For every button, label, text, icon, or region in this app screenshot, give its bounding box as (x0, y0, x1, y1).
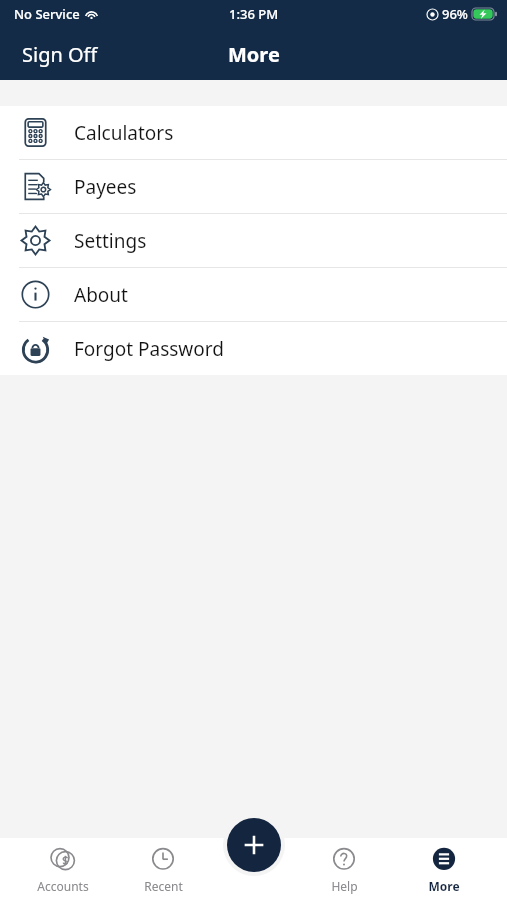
staticText: Sign Off (22, 41, 98, 68)
staticText: Forgot Password (74, 336, 224, 362)
button[interactable]: About (0, 268, 507, 322)
staticText: Recent (144, 878, 183, 894)
button[interactable]: Accounts (26, 841, 100, 898)
staticText: About (74, 282, 128, 308)
staticText: Payees (74, 174, 137, 200)
staticText: Settings (74, 228, 147, 254)
button[interactable]: Add (227, 818, 281, 872)
button[interactable]: Recent (126, 841, 200, 898)
button[interactable]: Calculators (0, 106, 507, 160)
staticText: No Service (14, 5, 80, 23)
staticText: 96% (442, 5, 468, 23)
staticText: More (228, 41, 280, 68)
staticText: More (428, 878, 460, 894)
button[interactable]: More (407, 841, 481, 898)
staticText: Calculators (74, 120, 174, 146)
button[interactable]: Sign Off (0, 33, 120, 76)
staticText: Help (331, 878, 358, 894)
button[interactable]: Help (307, 841, 381, 898)
staticText: Accounts (37, 878, 89, 894)
button[interactable]: Forgot Password (0, 322, 507, 375)
button[interactable]: Payees (0, 160, 507, 214)
staticText: 1:36 PM (229, 5, 279, 23)
button[interactable]: Settings (0, 214, 507, 268)
